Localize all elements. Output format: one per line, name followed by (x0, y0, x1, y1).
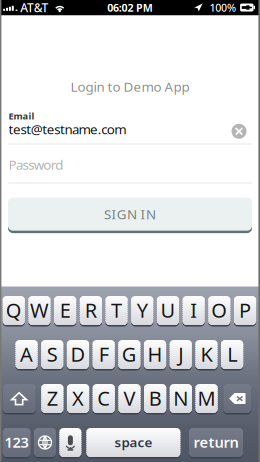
staticText: F (99, 341, 109, 367)
staticText: H (148, 341, 163, 367)
button[interactable]: E (54, 296, 76, 326)
button[interactable]: return (189, 428, 243, 458)
button[interactable]: Next keyboard (34, 428, 56, 458)
button[interactable]: B (144, 384, 166, 414)
button[interactable]: K (195, 340, 218, 370)
staticText: I (190, 297, 197, 323)
staticText: S (47, 341, 58, 367)
staticText: M (197, 385, 215, 411)
button[interactable]: D (67, 340, 89, 370)
button[interactable]: H (144, 340, 166, 370)
staticText: P (239, 297, 251, 323)
staticText: SIGN IN (104, 205, 156, 223)
staticText: U (160, 297, 175, 323)
button[interactable]: Delete (223, 384, 251, 414)
button[interactable]: S (41, 340, 63, 370)
staticText: O (211, 297, 227, 323)
staticText: Z (47, 385, 58, 411)
staticText: 100% (209, 0, 236, 15)
button[interactable]: Q (3, 296, 25, 326)
button[interactable]: C (93, 384, 115, 414)
button[interactable]: M (195, 384, 218, 414)
staticText: test@testname.com (8, 120, 126, 138)
staticText: R (85, 297, 97, 323)
button[interactable]: W (28, 296, 51, 326)
staticText: K (200, 341, 212, 367)
staticText: L (227, 341, 237, 367)
staticText: AT&T (20, 0, 49, 16)
button[interactable]: O (208, 296, 230, 326)
staticText: Login to Demo App (70, 78, 189, 95)
staticText: 123 (5, 432, 29, 452)
staticText: T (111, 297, 122, 323)
button[interactable]: I (182, 296, 205, 326)
button[interactable]: Shift (3, 384, 36, 414)
staticText: J (178, 341, 183, 367)
button[interactable]: Dictate (59, 428, 81, 458)
button[interactable]: SIGN IN (8, 198, 252, 233)
button[interactable]: U (157, 296, 179, 326)
button[interactable]: R (80, 296, 102, 326)
button[interactable]: Z (41, 384, 63, 414)
staticText: X (72, 385, 84, 411)
staticText: A (20, 341, 33, 367)
staticText: 06:02 PM (107, 0, 153, 15)
button[interactable]: A (15, 340, 38, 370)
staticText: N (173, 385, 188, 411)
button[interactable]: G (118, 340, 140, 370)
button[interactable]: 123 (3, 428, 31, 458)
staticText: G (122, 341, 137, 367)
staticText: Email (8, 110, 34, 122)
staticText: W (30, 297, 49, 323)
button[interactable]: X (67, 384, 89, 414)
button[interactable]: Clear text (229, 122, 248, 141)
button[interactable]: N (170, 384, 192, 414)
button[interactable]: J (170, 340, 192, 370)
staticText: C (97, 385, 110, 411)
button[interactable]: space (86, 428, 180, 458)
staticText: space (114, 433, 152, 451)
button[interactable]: T (105, 296, 128, 326)
staticText: return (193, 432, 238, 452)
button[interactable]: V (118, 384, 141, 414)
staticText: Q (6, 297, 22, 323)
staticText: V (123, 385, 135, 411)
button[interactable]: P (234, 296, 256, 326)
staticText: Y (137, 297, 148, 323)
staticText: Password (8, 156, 63, 173)
button[interactable]: F (92, 340, 115, 370)
staticText: B (149, 385, 162, 411)
button[interactable]: L (221, 340, 243, 370)
button[interactable]: Y (131, 296, 153, 326)
staticText: E (60, 297, 71, 323)
staticText: D (70, 341, 85, 367)
